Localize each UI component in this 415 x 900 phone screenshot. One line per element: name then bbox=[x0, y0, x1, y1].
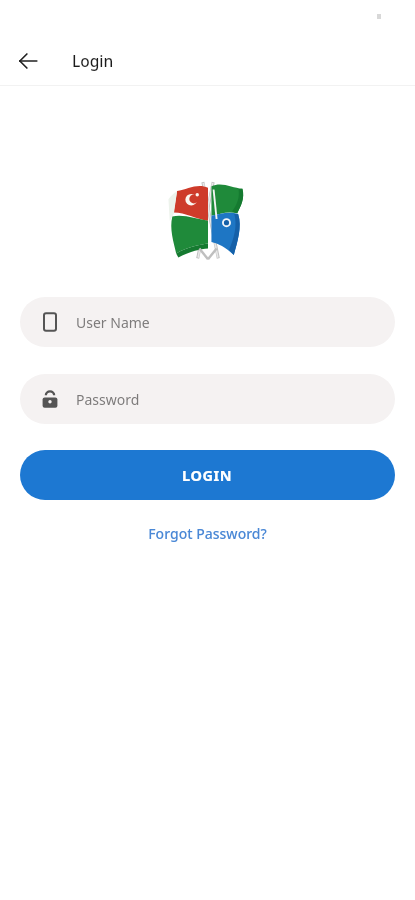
button[interactable]: Password bbox=[20, 374, 395, 424]
other: Password bbox=[39, 388, 61, 410]
other: Phone bbox=[39, 311, 61, 333]
staticText: Password bbox=[76, 390, 140, 409]
button[interactable]: Forgot Password? bbox=[140, 520, 275, 547]
button[interactable]: LOGIN bbox=[20, 450, 395, 500]
button[interactable]: Back bbox=[8, 41, 48, 81]
staticText: User Name bbox=[76, 313, 150, 332]
staticText: Forgot Password? bbox=[148, 524, 267, 543]
button[interactable]: Phone bbox=[20, 297, 395, 347]
staticText: LOGIN bbox=[182, 465, 233, 485]
staticText: Login bbox=[72, 50, 114, 71]
